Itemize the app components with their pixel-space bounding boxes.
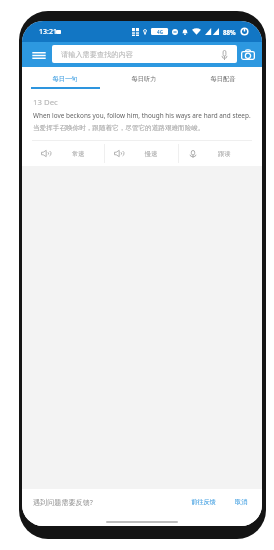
staticText: 4G [157,29,163,35]
button[interactable]: 每日一句 [25,67,104,90]
staticText: 遇到问题需要反馈? [33,497,93,507]
button[interactable]: Navigation menu [30,46,48,64]
button[interactable]: 请输入需要查找的内容 [52,45,237,63]
staticText: 慢速 [145,150,158,158]
staticText: When love beckons you, follow him, thoug… [33,111,251,120]
staticText: 当爱挥手召唤你时，跟随着它，尽管它的道路艰难而险峻。 [33,124,205,132]
staticText: 取消 [235,498,248,506]
button[interactable]: 慢速 [105,141,178,166]
button[interactable]: Voice search [219,49,230,60]
staticText: 常速 [72,150,85,158]
staticText: 88% [223,28,236,36]
staticText: 每日配音 [210,75,236,83]
button[interactable]: 跟读 [179,141,252,166]
staticText: 13 Dec [33,97,58,108]
staticText: 请输入需要查找的内容 [61,50,133,59]
button[interactable]: 常速 [32,141,104,166]
staticText: 每日一句 [52,75,78,83]
staticText: 每日听力 [131,75,157,83]
staticText: 前往反馈 [191,498,216,506]
button[interactable]: 每日听力 [104,67,183,90]
button[interactable]: 前往反馈 [189,495,218,509]
button[interactable]: 每日配音 [183,67,262,90]
button[interactable]: Search by camera [239,46,256,63]
staticText: 13:21 [39,27,57,37]
button[interactable]: 取消 [233,495,250,509]
staticText: 跟读 [218,150,231,158]
